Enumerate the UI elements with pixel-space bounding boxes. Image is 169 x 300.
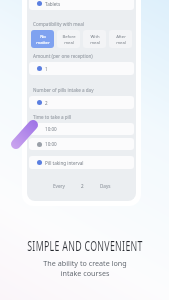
staticText: Time to take a pill — [33, 114, 72, 120]
staticText: Number of pills intake a day — [33, 87, 94, 93]
button[interactable]: Pill taking interval — [29, 156, 134, 169]
staticText: Tablets — [45, 1, 61, 7]
staticText: 2 — [81, 183, 84, 189]
staticText: SIMPLE AND CONVENIENT — [0, 236, 169, 255]
button[interactable]: With meal — [83, 30, 106, 48]
button[interactable]: 10:00 — [29, 138, 134, 150]
staticText: 10:00 — [45, 126, 57, 132]
staticText: With meal — [90, 34, 100, 45]
button[interactable]: After meal — [109, 30, 132, 48]
staticText: 1 — [45, 66, 48, 72]
button[interactable]: Tablets — [29, 0, 134, 10]
staticText: No matter — [36, 34, 50, 45]
staticText: Amount (per one reception) — [33, 53, 93, 59]
staticText: Days — [100, 183, 111, 189]
button[interactable]: 10:00 — [29, 123, 134, 135]
staticText: Compatibility with meal — [33, 21, 84, 27]
button[interactable]: Before meal — [57, 30, 80, 48]
button[interactable]: 1 — [29, 62, 134, 75]
button[interactable]: 2 — [29, 96, 134, 109]
button[interactable]: No matter — [31, 30, 54, 48]
staticText: Pill taking interval — [45, 160, 84, 166]
staticText: Every — [53, 183, 65, 189]
staticText: Before meal — [62, 34, 76, 45]
staticText: After meal — [116, 34, 126, 45]
staticText: The ability to create long intake course… — [43, 258, 127, 278]
staticText: 10:00 — [45, 141, 57, 147]
staticText: 2 — [45, 100, 48, 106]
